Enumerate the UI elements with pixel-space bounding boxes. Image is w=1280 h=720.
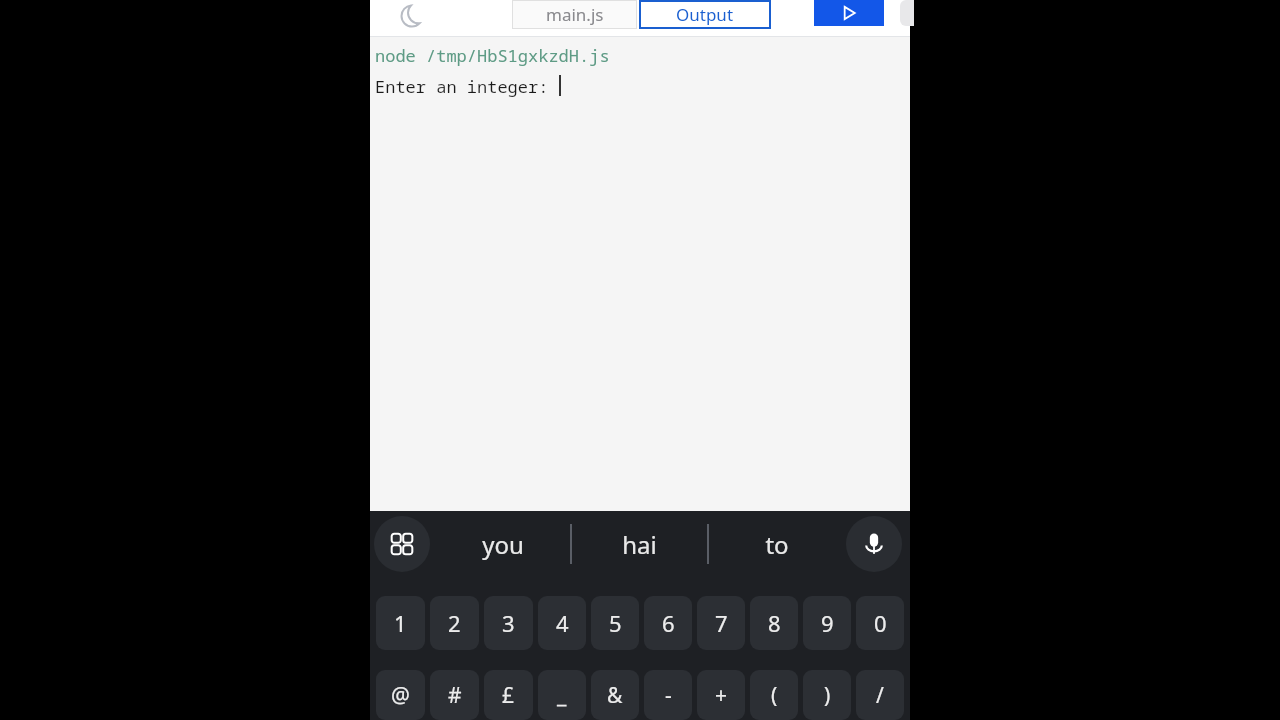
staticText: 6 <box>662 608 675 638</box>
staticText: hai <box>622 528 657 561</box>
button[interactable]: 8 <box>750 596 798 650</box>
button[interactable]: 7 <box>697 596 745 650</box>
button[interactable]: 0 <box>856 596 904 650</box>
staticText: main.js <box>546 3 604 26</box>
staticText: 7 <box>715 608 728 638</box>
button[interactable]: & <box>591 670 639 720</box>
staticText: _ <box>557 681 567 710</box>
button[interactable]: ( <box>750 670 798 720</box>
button[interactable]: Output <box>639 0 771 29</box>
staticText: /tmp/HbS1gxkzdH.js <box>426 44 610 67</box>
staticText: node <box>375 44 426 67</box>
button[interactable]: ) <box>803 670 851 720</box>
button[interactable]: @ <box>376 670 425 720</box>
staticText: to <box>765 528 789 561</box>
button[interactable]: 3 <box>484 596 533 650</box>
button[interactable]: you <box>436 511 570 577</box>
button[interactable]: - <box>644 670 692 720</box>
staticText: 0 <box>874 608 887 638</box>
staticText: 4 <box>556 608 569 638</box>
staticText: 5 <box>609 608 622 638</box>
button[interactable]: 2 <box>430 596 479 650</box>
button[interactable]: 5 <box>591 596 639 650</box>
button[interactable]: main.js <box>512 0 637 29</box>
button[interactable]: hai <box>572 511 707 577</box>
button[interactable]: Run <box>814 0 884 26</box>
staticText: # <box>448 681 462 710</box>
staticText: + <box>715 681 728 710</box>
button[interactable]: / <box>856 670 904 720</box>
staticText: Output <box>676 3 734 26</box>
staticText: 2 <box>448 608 461 638</box>
staticText: ( <box>771 681 778 710</box>
staticText: ) <box>824 681 831 710</box>
button[interactable]: 4 <box>538 596 586 650</box>
button[interactable]: _ <box>538 670 586 720</box>
staticText: / <box>876 681 884 710</box>
staticText: & <box>607 681 623 710</box>
button[interactable]: Toggle dark theme <box>390 0 434 32</box>
button[interactable]: Voice input <box>846 516 902 572</box>
staticText: 1 <box>394 608 407 638</box>
staticText: - <box>665 681 672 710</box>
button[interactable]: 1 <box>376 596 425 650</box>
staticText: you <box>482 528 524 561</box>
button[interactable]: Clipboard <box>374 516 430 572</box>
staticText: Enter an integer: <box>375 75 559 98</box>
staticText: 3 <box>502 608 515 638</box>
button[interactable]: + <box>697 670 745 720</box>
button[interactable]: 9 <box>803 596 851 650</box>
button[interactable]: £ <box>484 670 533 720</box>
button[interactable]: 6 <box>644 596 692 650</box>
staticText: 8 <box>768 608 781 638</box>
button[interactable]: to <box>709 511 844 577</box>
staticText: @ <box>391 681 410 710</box>
staticText: £ <box>502 681 515 710</box>
staticText: 9 <box>821 608 834 638</box>
button[interactable]: # <box>430 670 479 720</box>
